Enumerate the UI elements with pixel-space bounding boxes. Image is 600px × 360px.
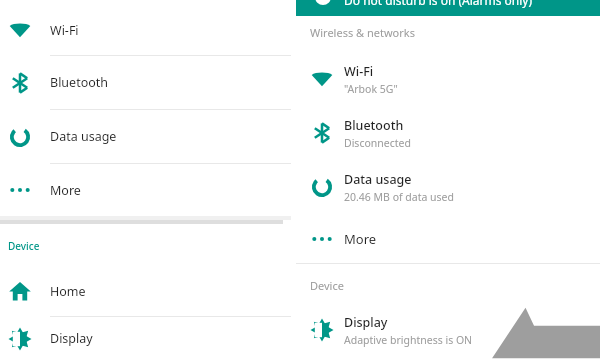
button[interactable]: Wi-Fi — [296, 53, 600, 105]
staticText: Home — [50, 283, 86, 300]
staticText: Bluetooth — [344, 117, 404, 134]
button[interactable]: Display — [0, 317, 291, 360]
staticText: 20.46 MB of data used — [344, 190, 454, 204]
staticText: Do not disturb is on (Alarms only) — [344, 0, 533, 8]
button[interactable]: Wi-Fi — [0, 5, 291, 55]
button[interactable]: Bluetooth — [296, 107, 600, 159]
button[interactable]: More — [296, 215, 600, 263]
staticText: Wi-Fi — [344, 63, 374, 80]
staticText: "Arbok 5G" — [344, 82, 398, 96]
button[interactable]: Home — [0, 266, 291, 316]
button[interactable]: Bluetooth — [0, 56, 291, 109]
staticText: Data usage — [50, 128, 117, 145]
staticText: Adaptive brightness is ON — [344, 333, 473, 347]
button[interactable]: More — [0, 164, 291, 216]
staticText: Device — [8, 239, 40, 253]
staticText: Disconnected — [344, 136, 411, 150]
staticText: Wireless & networks — [310, 25, 415, 40]
staticText: More — [50, 182, 81, 199]
staticText: Bluetooth — [50, 74, 109, 91]
staticText: Data usage — [344, 171, 412, 188]
button[interactable]: Display — [296, 304, 600, 356]
staticText: Wi-Fi — [50, 22, 79, 39]
staticText: Device — [310, 278, 344, 293]
staticText: More — [344, 230, 377, 248]
button[interactable]: Data usage — [296, 161, 600, 213]
staticText: Display — [344, 314, 388, 331]
button[interactable]: Data usage — [0, 110, 291, 163]
staticText: Display — [50, 330, 93, 347]
button[interactable]: Do not disturb is on (Alarms only) — [296, 0, 600, 16]
